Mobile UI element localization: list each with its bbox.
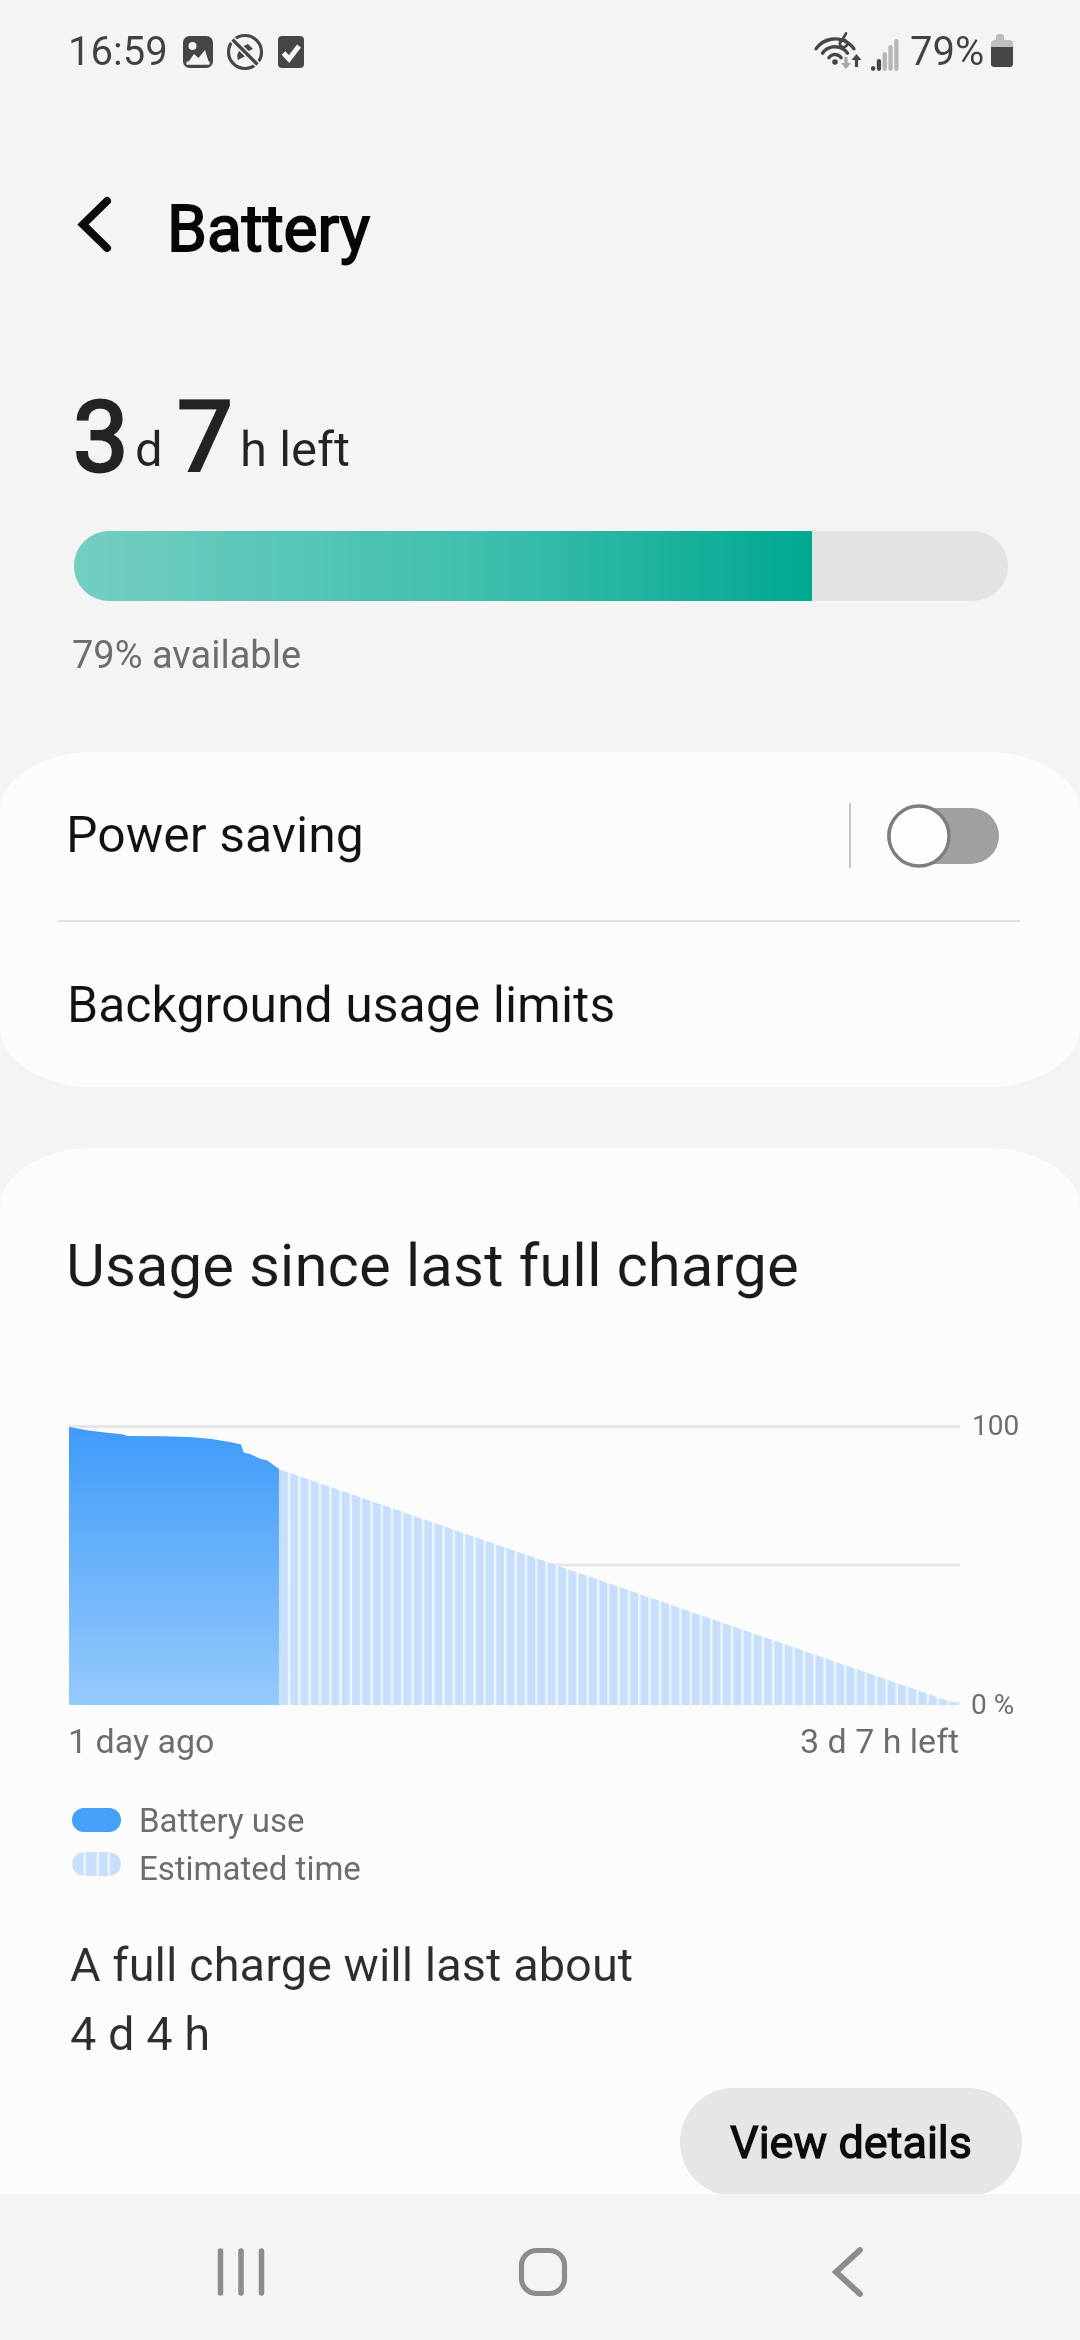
staticText: Estimated time <box>139 1849 361 1888</box>
button[interactable]: Power saving <box>0 752 1080 920</box>
button[interactable]: Home <box>483 2225 603 2319</box>
staticText: 100 <box>972 1409 1020 1442</box>
button[interactable]: Background usage limits <box>0 922 1080 1086</box>
button[interactable]: Navigate up <box>33 152 133 252</box>
staticText: 4 d 4 h <box>70 2006 211 2061</box>
staticText: Battery use <box>139 1801 305 1840</box>
staticText: View details <box>730 2116 972 2169</box>
button[interactable]: Power saving switch, off <box>887 808 999 864</box>
staticText: A full charge will last about <box>70 1937 634 1992</box>
staticText: 79% <box>910 28 985 75</box>
staticText: 0 % <box>971 1688 1015 1721</box>
staticText: Usage since last full charge <box>66 1230 799 1300</box>
staticText: 79% available <box>72 633 302 678</box>
staticText: 3 <box>73 379 129 495</box>
staticText: d <box>135 421 163 478</box>
staticText: Power saving <box>66 806 364 865</box>
staticText: Background usage limits <box>67 976 616 1035</box>
button[interactable]: Recent apps <box>181 2225 301 2319</box>
button[interactable]: Back <box>788 2225 908 2319</box>
staticText: 7 <box>177 379 233 495</box>
staticText: 3 d 7 h left <box>800 1721 960 1761</box>
button[interactable]: View details <box>680 2088 1022 2195</box>
staticText: Battery <box>167 192 371 267</box>
staticText: 16:59 <box>68 28 168 75</box>
staticText: h left <box>240 421 351 478</box>
staticText: 1 day ago <box>68 1721 215 1761</box>
